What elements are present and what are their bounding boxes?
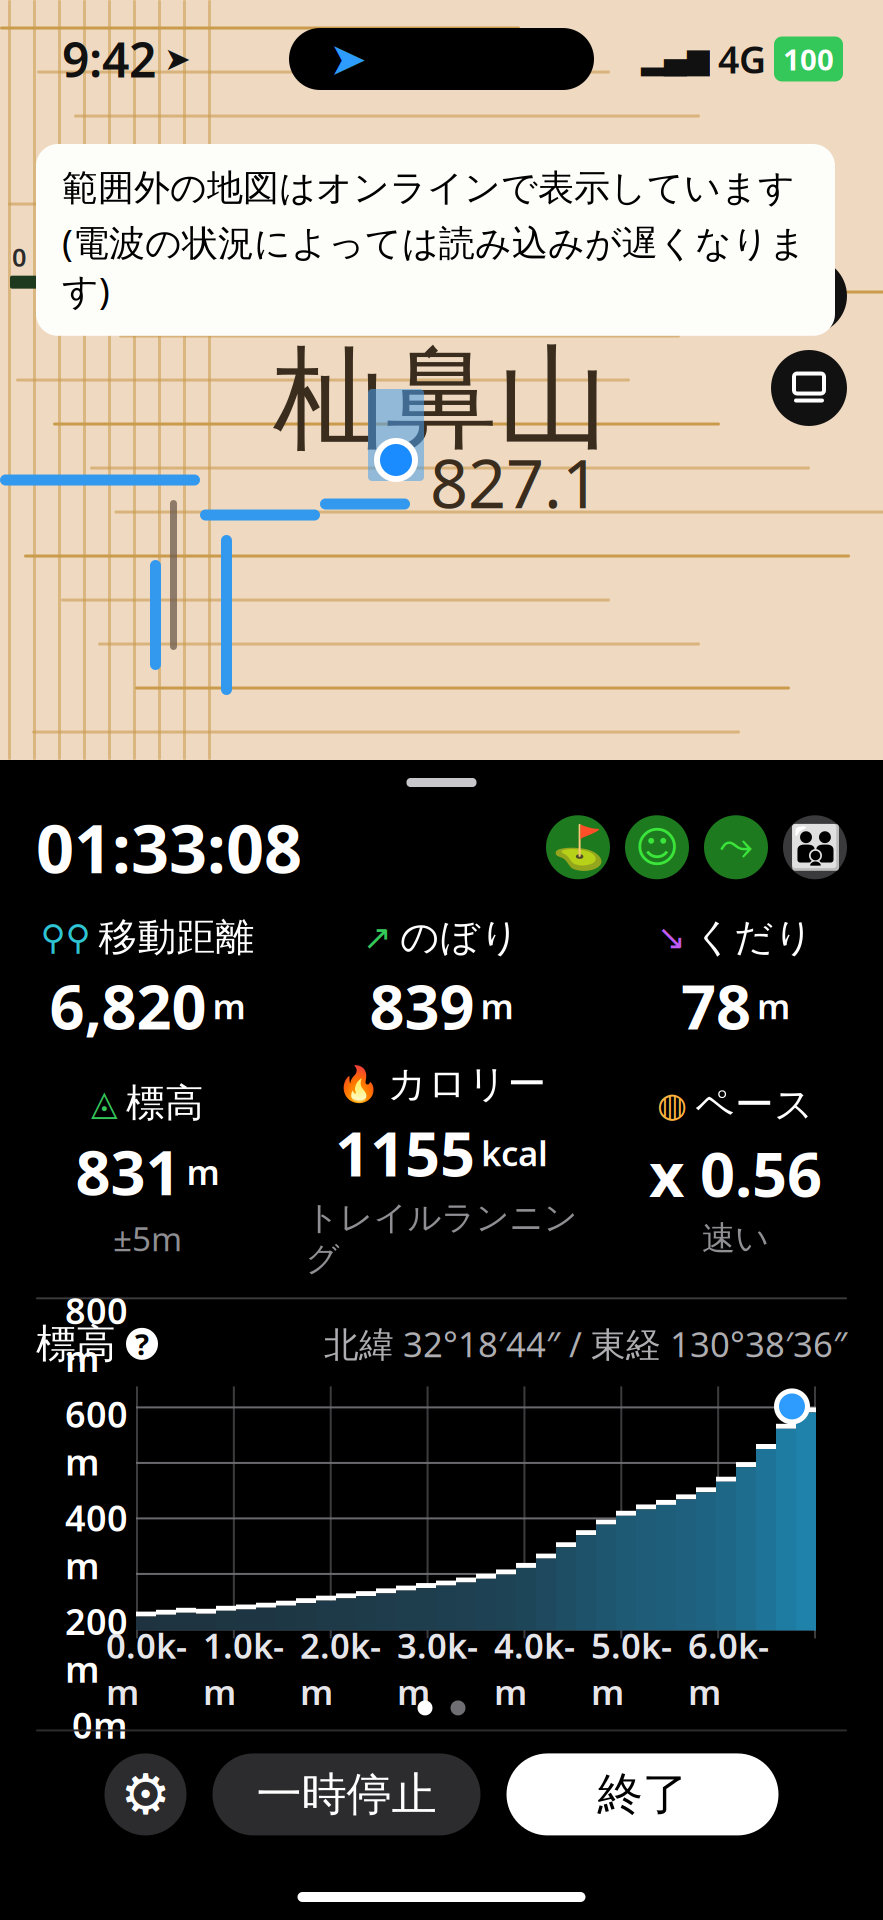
staticText: m: [186, 1148, 219, 1194]
staticText: 👪: [788, 823, 841, 872]
staticText: ▂▄▆: [641, 42, 710, 76]
button[interactable]: Map layers: [771, 350, 847, 426]
staticText: 3.0km: [397, 1622, 478, 1714]
staticText: 1155: [335, 1112, 475, 1193]
staticText: くだり: [694, 913, 814, 961]
staticText: 0.0km: [106, 1622, 187, 1714]
staticText: ↘: [657, 918, 686, 957]
staticText: 4G: [718, 34, 766, 84]
button[interactable]: Messages: [625, 815, 689, 879]
staticText: 827.1: [430, 438, 600, 526]
staticText: 移動距離: [98, 913, 254, 961]
staticText: 6,820: [49, 965, 206, 1046]
button[interactable]: Settings: [104, 1753, 186, 1835]
staticText: 800m: [65, 1286, 128, 1382]
staticText: 2.0km: [300, 1622, 381, 1714]
staticText: 100: [783, 39, 834, 78]
staticText: 5.0km: [591, 1622, 672, 1714]
staticText: x 0.56: [649, 1132, 822, 1214]
staticText: 4.0km: [494, 1622, 575, 1714]
staticText: 🔥: [336, 1064, 379, 1104]
button[interactable]: Elevation help: [126, 1328, 158, 1360]
button[interactable]: Route off-track: [704, 815, 768, 879]
staticText: kcal: [481, 1130, 548, 1176]
staticText: 400m: [65, 1493, 128, 1589]
staticText: ◍: [657, 1085, 687, 1124]
staticText: ⤳: [719, 826, 753, 868]
staticText: (電波の状況によっては読み込みが遅くなります): [62, 218, 806, 314]
staticText: 0m: [72, 1701, 128, 1749]
staticText: ➤: [329, 33, 367, 85]
staticText: 0: [12, 240, 26, 274]
staticText: ➤: [164, 41, 191, 77]
staticText: 200m: [65, 1597, 128, 1693]
staticText: 標高: [126, 1079, 204, 1127]
staticText: ±5m: [113, 1216, 182, 1260]
staticText: 78: [681, 965, 751, 1046]
staticText: ⚲⚲: [40, 918, 90, 957]
staticText: 杣鼻山: [273, 330, 609, 468]
staticText: 600m: [65, 1390, 128, 1485]
button[interactable]: Waypoints: [546, 815, 610, 879]
staticText: カロリー: [387, 1060, 546, 1108]
staticText: のぼり: [400, 913, 520, 961]
staticText: m: [757, 983, 790, 1029]
staticText: トレイルランニング: [305, 1197, 577, 1279]
staticText: ⛳: [551, 823, 604, 872]
staticText: 1.0km: [203, 1622, 284, 1714]
staticText: 839: [369, 965, 474, 1046]
button[interactable]: Group members: [783, 815, 847, 879]
staticText: 831: [75, 1131, 180, 1212]
button[interactable]: 終了: [506, 1753, 778, 1835]
staticText: ↗: [363, 918, 392, 957]
staticText: 100 m: [134, 240, 207, 274]
staticText: ☺: [635, 823, 679, 871]
staticText: ペース: [695, 1081, 814, 1128]
staticText: 範囲外の地図はオンラインで表示しています: [62, 166, 795, 210]
button[interactable]: 一時停止: [212, 1753, 480, 1835]
staticText: 標高: [36, 1319, 116, 1368]
button[interactable]: Fit track to screen: [771, 258, 847, 334]
staticText: 9:42: [62, 27, 156, 91]
staticText: m: [212, 983, 245, 1029]
staticText: 終了: [597, 1767, 687, 1822]
staticText: 一時停止: [256, 1767, 436, 1822]
staticText: 北緯 32°18′44″ / 東経 130°38′36″: [324, 1321, 847, 1367]
staticText: ◬: [91, 1083, 118, 1123]
staticText: 6.0km: [688, 1622, 769, 1714]
staticText: 01:33:08: [36, 803, 302, 891]
staticText: ⚙: [120, 1763, 170, 1826]
staticText: m: [480, 983, 513, 1029]
staticText: ?: [135, 1324, 149, 1363]
staticText: 200 m: [257, 240, 330, 274]
staticText: 速い: [702, 1218, 769, 1259]
